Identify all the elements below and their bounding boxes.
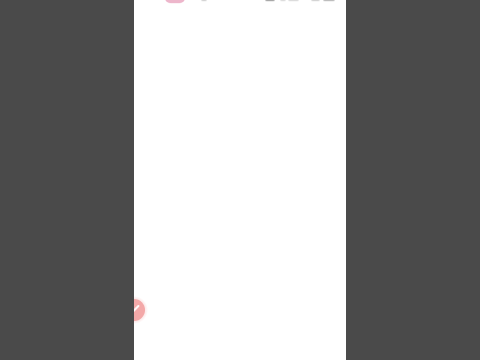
button[interactable]: App logo [159, 0, 191, 4]
button[interactable]: Filter [274, 0, 292, 2]
button[interactable]: Sort [282, 0, 305, 2]
button[interactable]: Inbox [195, 0, 213, 2]
button[interactable]: Notifications [305, 0, 326, 2]
button[interactable]: Search [259, 0, 281, 2]
button[interactable]: Compose [134, 299, 145, 321]
button[interactable]: Account [317, 0, 341, 2]
